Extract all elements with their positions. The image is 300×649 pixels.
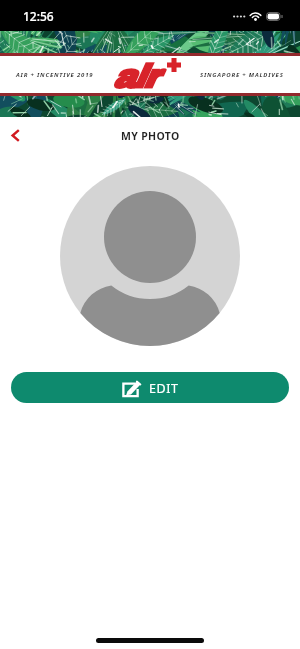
staticText: SINGAPORE + MALDIVES [200,71,284,79]
staticText: 12:56 [23,8,54,24]
button[interactable]: Back [0,119,30,149]
staticText: EDIT [149,380,179,397]
staticText: AIR + INCENTIVE 2019 [16,71,94,79]
button[interactable]: EDIT [11,372,289,403]
staticText: air [112,59,157,95]
staticText: MY PHOTO [121,129,180,143]
